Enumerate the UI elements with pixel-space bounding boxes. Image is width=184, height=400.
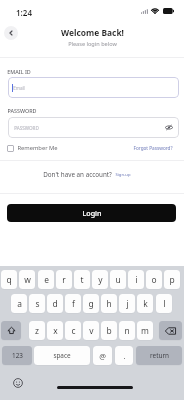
staticText: space: [53, 351, 71, 360]
staticText: e: [44, 274, 49, 285]
staticText: Sign-up: [115, 172, 131, 178]
button[interactable]: g: [83, 294, 99, 313]
button[interactable]: t: [74, 270, 90, 289]
staticText: m: [141, 325, 149, 336]
staticText: return: [150, 351, 169, 360]
staticText: b: [106, 325, 112, 336]
button[interactable]: space: [34, 346, 90, 365]
button[interactable]: v: [83, 321, 99, 340]
staticText: q: [6, 274, 12, 285]
button[interactable]: n: [119, 321, 135, 340]
button[interactable]: k: [137, 294, 153, 313]
staticText: a: [17, 298, 22, 309]
staticText: u: [115, 274, 121, 285]
staticText: PASSWORD: [14, 125, 39, 131]
button[interactable]: o: [146, 270, 162, 289]
staticText: v: [89, 325, 94, 336]
staticText: Remember Me: [17, 144, 58, 152]
button[interactable]: return: [136, 346, 182, 365]
staticText: l: [163, 298, 166, 309]
button[interactable]: r: [56, 270, 72, 289]
button[interactable]: Forgot Password?: [133, 145, 173, 151]
button[interactable]: z: [29, 321, 45, 340]
staticText: 123: [12, 351, 23, 360]
button[interactable]: Back: [4, 26, 18, 40]
staticText: 1:24: [16, 7, 32, 18]
staticText: r: [62, 274, 66, 285]
staticText: @: [99, 351, 106, 361]
staticText: d: [52, 298, 58, 309]
staticText: Welcome Back!: [61, 27, 124, 38]
staticText: i: [135, 274, 138, 285]
staticText: z: [35, 325, 39, 336]
staticText: f: [72, 298, 75, 309]
button[interactable]: w: [19, 270, 35, 289]
button[interactable]: y: [92, 270, 108, 289]
button[interactable]: s: [29, 294, 45, 313]
button[interactable]: PASSWORD: [8, 117, 179, 138]
staticText: c: [71, 325, 76, 336]
button[interactable]: Emoji keyboard: [13, 378, 23, 388]
staticText: g: [88, 298, 94, 309]
staticText: EMAIL ID: [7, 68, 31, 75]
button[interactable]: q: [1, 270, 17, 289]
staticText: w: [24, 274, 31, 285]
button[interactable]: x: [47, 321, 63, 340]
button[interactable]: Shift: [1, 321, 21, 340]
button[interactable]: f: [65, 294, 81, 313]
button[interactable]: h: [101, 294, 117, 313]
button[interactable]: Backspace: [159, 321, 182, 340]
staticText: Forgot Password?: [133, 145, 173, 151]
button[interactable]: Remember Me: [7, 144, 58, 152]
staticText: Please login below: [68, 40, 117, 48]
button[interactable]: d: [47, 294, 63, 313]
button[interactable]: u: [110, 270, 126, 289]
staticText: x: [53, 325, 58, 336]
staticText: Don't have an account?: [43, 170, 112, 179]
button[interactable]: m: [137, 321, 153, 340]
staticText: y: [98, 274, 103, 285]
button[interactable]: l: [156, 294, 172, 313]
button[interactable]: .: [115, 346, 133, 365]
button[interactable]: b: [101, 321, 117, 340]
staticText: PASSWORD: [7, 107, 37, 114]
button[interactable]: Email: [8, 77, 179, 98]
staticText: .: [123, 351, 126, 361]
button[interactable]: a: [11, 294, 27, 313]
staticText: t: [80, 274, 84, 285]
button[interactable]: c: [65, 321, 81, 340]
staticText: o: [151, 274, 157, 285]
button[interactable]: Login: [7, 204, 176, 222]
staticText: p: [169, 274, 175, 285]
button[interactable]: 123: [2, 346, 32, 365]
button[interactable]: Show password: [163, 122, 174, 133]
button[interactable]: j: [119, 294, 135, 313]
button[interactable]: @: [93, 346, 112, 365]
staticText: s: [35, 298, 40, 309]
button[interactable]: p: [164, 270, 180, 289]
staticText: n: [124, 325, 130, 336]
staticText: k: [143, 298, 148, 309]
staticText: Email: [13, 85, 25, 91]
button[interactable]: Sign-up: [115, 172, 131, 178]
staticText: h: [106, 298, 112, 309]
button[interactable]: i: [128, 270, 144, 289]
staticText: j: [126, 298, 129, 309]
staticText: Login: [82, 208, 102, 218]
button[interactable]: e: [38, 270, 54, 289]
